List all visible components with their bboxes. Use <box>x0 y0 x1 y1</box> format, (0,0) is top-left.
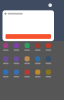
button[interactable] <box>5 34 51 39</box>
button[interactable]: Close <box>48 3 52 7</box>
